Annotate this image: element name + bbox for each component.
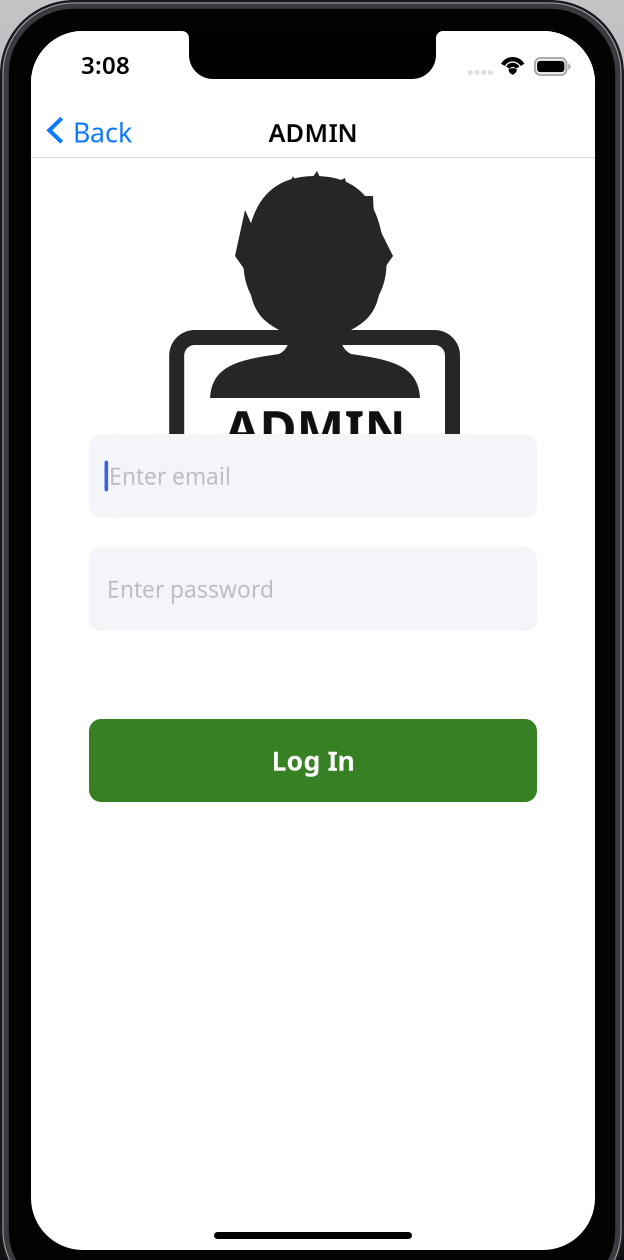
button[interactable]: Back [36, 97, 150, 157]
staticText: Enter password [107, 574, 274, 604]
button[interactable]: Log In [89, 719, 537, 802]
staticText: ADMIN [224, 394, 405, 461]
staticText: ADMIN [268, 116, 357, 149]
button[interactable]: Enter email [89, 434, 537, 518]
staticText: 3:08 [81, 49, 130, 81]
staticText: Back [73, 114, 132, 150]
staticText: Log In [271, 743, 354, 778]
button[interactable]: Enter password [89, 547, 537, 631]
staticText: Enter email [109, 461, 231, 491]
